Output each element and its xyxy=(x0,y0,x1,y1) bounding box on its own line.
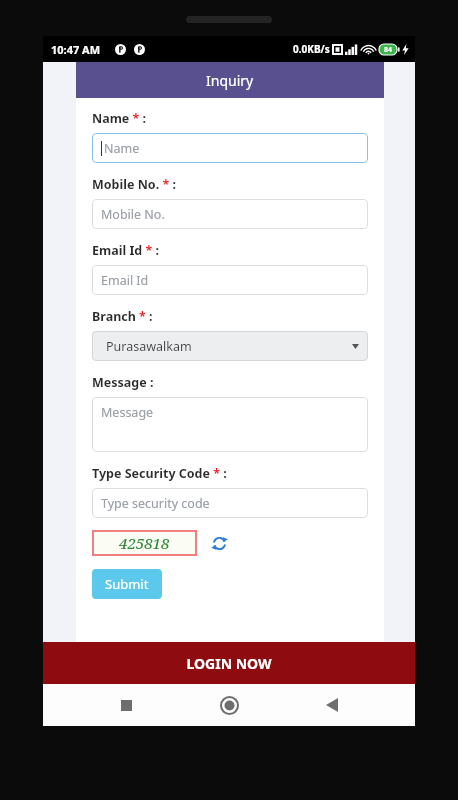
staticText: Email Id xyxy=(101,272,149,289)
button[interactable]: Inquiry xyxy=(76,62,384,98)
staticText: Submit xyxy=(105,575,149,593)
button[interactable]: Submit xyxy=(92,569,162,599)
staticText: Mobile No. xyxy=(101,206,165,223)
staticText: 10:47 AM xyxy=(51,42,101,57)
button[interactable]: Email Id xyxy=(92,265,368,295)
staticText: Mobile No. * : xyxy=(92,176,176,193)
staticText: Inquiry xyxy=(206,71,254,90)
button[interactable]: Recent apps xyxy=(106,685,146,725)
staticText: Type Security Code * : xyxy=(92,465,227,482)
button[interactable]: LOGIN NOW xyxy=(43,642,415,684)
button[interactable]: Message xyxy=(92,397,368,452)
button[interactable]: Refresh captcha xyxy=(208,532,230,554)
staticText: Message xyxy=(101,404,154,421)
button[interactable]: Type security code xyxy=(92,488,368,518)
button[interactable]: Home xyxy=(209,685,249,725)
button[interactable]: Mobile No. xyxy=(92,199,368,229)
staticText: LOGIN NOW xyxy=(186,654,272,673)
staticText: Name xyxy=(104,140,140,157)
button[interactable]: Back xyxy=(312,685,352,725)
staticText: 425818 xyxy=(119,533,170,553)
staticText: Name * : xyxy=(92,110,147,127)
button[interactable]: Name xyxy=(92,133,368,163)
staticText: Message : xyxy=(92,374,154,391)
staticText: 84 xyxy=(384,45,393,55)
staticText: Email Id * : xyxy=(92,242,159,259)
staticText: Branch * : xyxy=(92,308,153,325)
button[interactable]: Purasawalkam xyxy=(92,331,368,361)
staticText: 0.0KB/s xyxy=(293,42,330,56)
staticText: Purasawalkam xyxy=(106,338,192,355)
staticText: Type security code xyxy=(101,495,210,512)
